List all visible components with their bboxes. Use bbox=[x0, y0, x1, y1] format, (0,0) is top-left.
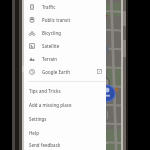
staticText: Google Earth bbox=[42, 69, 70, 75]
button[interactable]: Terrain bbox=[24, 52, 106, 65]
staticText: Bicycling bbox=[42, 30, 61, 36]
staticText: Satellite bbox=[42, 43, 60, 49]
other: Open in new bbox=[97, 69, 102, 74]
button[interactable]: Send feedback bbox=[24, 140, 106, 150]
button[interactable]: Add a missing place bbox=[24, 98, 106, 112]
staticText: Send feedback bbox=[29, 142, 61, 148]
staticText: Help bbox=[29, 130, 39, 136]
button[interactable]: Traffic bbox=[24, 0, 106, 13]
staticText: Settings bbox=[29, 116, 47, 122]
button[interactable]: Satellite bbox=[24, 39, 106, 52]
button[interactable]: Public transit bbox=[24, 13, 106, 26]
staticText: Tips and Tricks bbox=[29, 88, 61, 94]
button[interactable]: Google Earth bbox=[24, 65, 106, 78]
staticText: Public transit bbox=[42, 17, 71, 23]
button[interactable]: Help bbox=[24, 126, 106, 140]
staticText: Add a missing place bbox=[29, 102, 72, 108]
button[interactable]: Tips and Tricks bbox=[24, 84, 106, 98]
staticText: Traffic bbox=[42, 4, 56, 10]
staticText: Terrain bbox=[42, 56, 58, 62]
button[interactable]: Bicycling bbox=[24, 26, 106, 39]
button[interactable]: Settings bbox=[24, 112, 106, 126]
